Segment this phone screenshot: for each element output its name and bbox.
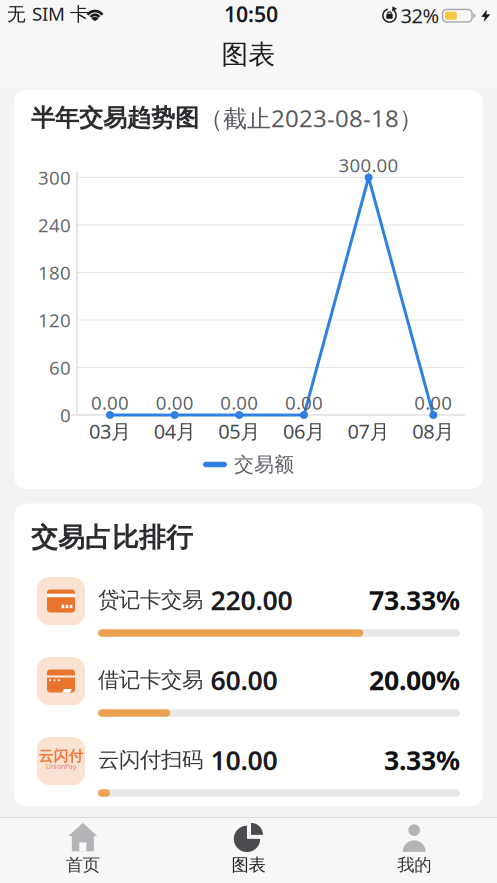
staticText: 0.00 <box>91 390 129 415</box>
staticText: 20.00% <box>369 662 460 698</box>
button[interactable]: 首页 <box>23 819 143 879</box>
staticText: 60 <box>49 355 71 380</box>
staticText: 0.00 <box>414 390 452 415</box>
staticText: 180 <box>38 260 71 285</box>
staticText: 0 <box>60 403 71 427</box>
staticText: 10:50 <box>224 0 278 28</box>
staticText: 60.00 <box>210 662 277 698</box>
staticText: 10.00 <box>210 742 277 778</box>
staticText: 云闪付扫码 <box>98 747 203 773</box>
staticText: 贷记卡交易 <box>98 587 203 613</box>
staticText: 图表 <box>231 854 265 876</box>
staticText: （截止2023-08-18） <box>199 102 423 134</box>
staticText: 300.00 <box>339 153 399 177</box>
staticText: 03月 <box>89 418 131 444</box>
staticText: 交易占比排行 <box>31 521 193 554</box>
staticText: 交易额 <box>234 452 294 477</box>
staticText: UnionPay <box>46 762 76 771</box>
button[interactable]: 我的 <box>354 819 474 879</box>
staticText: 我的 <box>397 854 431 876</box>
staticText: 220.00 <box>210 582 292 618</box>
staticText: 04月 <box>154 418 196 444</box>
staticText: 借记卡交易 <box>98 667 203 693</box>
staticText: 首页 <box>66 854 100 876</box>
staticText: 73.33% <box>369 582 460 618</box>
staticText: 半年交易趋势图 <box>31 103 199 133</box>
staticText: 300 <box>38 165 71 190</box>
staticText: 0.00 <box>156 390 194 415</box>
staticText: 120 <box>38 308 71 332</box>
staticText: 32% <box>400 2 439 29</box>
staticText: 07月 <box>348 418 390 444</box>
staticText: 3.33% <box>384 742 460 778</box>
staticText: 08月 <box>412 418 454 444</box>
staticText: 06月 <box>283 418 325 444</box>
staticText: 图表 <box>221 38 275 71</box>
staticText: 240 <box>38 213 71 237</box>
staticText: 0.00 <box>220 390 258 415</box>
button[interactable]: 图表 <box>188 819 308 879</box>
staticText: 云闪付 <box>38 747 83 765</box>
staticText: 05月 <box>218 418 260 444</box>
staticText: 无 SIM 卡 <box>7 1 89 26</box>
staticText: 0.00 <box>285 390 323 415</box>
